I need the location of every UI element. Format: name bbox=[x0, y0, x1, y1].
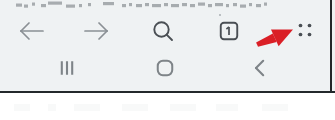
button[interactable]: Tabs, 1 open bbox=[204, 13, 254, 49]
button[interactable]: More options bbox=[283, 12, 327, 48]
button[interactable]: Back bbox=[7, 13, 57, 49]
button[interactable]: Search bbox=[138, 13, 188, 49]
button[interactable]: Forward bbox=[71, 13, 121, 49]
button[interactable]: Home bbox=[135, 51, 195, 85]
button[interactable]: Recent apps bbox=[37, 51, 97, 85]
button[interactable]: Back bbox=[231, 51, 291, 85]
